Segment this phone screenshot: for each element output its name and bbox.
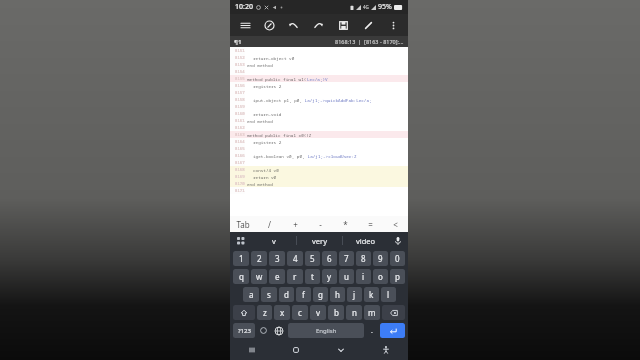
button[interactable]: u xyxy=(339,269,354,284)
button[interactable]: y xyxy=(322,269,337,284)
button[interactable]: x xyxy=(274,305,290,320)
button[interactable]: Edit xyxy=(359,16,377,34)
staticText: 8171 xyxy=(235,188,245,193)
button[interactable]: k xyxy=(364,287,379,302)
staticText: ¶1 xyxy=(234,38,242,46)
staticText: 8163 xyxy=(235,132,245,137)
button[interactable]: Period xyxy=(365,323,379,338)
staticText: 8158 xyxy=(235,97,245,102)
button[interactable]: r xyxy=(287,269,303,284)
button[interactable]: o xyxy=(373,269,388,284)
button[interactable]: - xyxy=(308,216,333,232)
button[interactable]: < xyxy=(383,216,408,232)
staticText: 2 xyxy=(257,253,262,264)
button[interactable]: 4 xyxy=(287,251,303,266)
button[interactable]: Back xyxy=(318,340,363,360)
button[interactable]: Tab xyxy=(230,216,256,232)
staticText: 4 xyxy=(293,253,298,264)
button[interactable]: v xyxy=(252,232,296,249)
button[interactable]: = xyxy=(358,216,383,232)
button[interactable]: d xyxy=(279,287,294,302)
button[interactable]: g xyxy=(313,287,328,302)
button[interactable]: 5 xyxy=(305,251,320,266)
button[interactable]: n xyxy=(346,305,362,320)
button[interactable]: l xyxy=(381,287,396,302)
button[interactable]: 3 xyxy=(269,251,285,266)
button[interactable]: Voice input xyxy=(388,232,408,249)
staticText: Lec/a;)V xyxy=(307,76,328,82)
button[interactable]: / xyxy=(256,216,282,232)
staticText: 6 xyxy=(327,253,332,264)
button[interactable]: Menu xyxy=(236,16,254,34)
button[interactable]: Keyboard options xyxy=(230,232,252,249)
staticText: b xyxy=(334,307,339,318)
button[interactable]: a xyxy=(243,287,259,302)
staticText: z xyxy=(263,307,267,318)
button[interactable]: very xyxy=(297,232,342,249)
staticText: 8164 xyxy=(235,139,245,144)
staticText: 8165 xyxy=(235,146,245,151)
staticText: end method xyxy=(247,118,273,124)
staticText: i xyxy=(362,271,365,282)
staticText: n xyxy=(352,307,357,318)
button[interactable]: + xyxy=(282,216,308,232)
staticText: 8168 xyxy=(235,167,245,172)
button[interactable]: q xyxy=(233,269,249,284)
button[interactable]: Shift xyxy=(233,305,255,320)
button[interactable]: w xyxy=(251,269,267,284)
staticText: 8155 xyxy=(235,76,245,81)
staticText: k xyxy=(369,289,374,300)
button[interactable]: b xyxy=(328,305,344,320)
staticText: f xyxy=(302,289,305,300)
button[interactable]: h xyxy=(330,287,345,302)
button[interactable]: s xyxy=(261,287,277,302)
staticText: d xyxy=(284,289,289,300)
button[interactable]: p xyxy=(390,269,405,284)
staticText: method public final x0()Z xyxy=(247,132,312,138)
button[interactable]: English xyxy=(288,323,364,338)
button[interactable]: 7 xyxy=(339,251,354,266)
button[interactable]: Save xyxy=(334,16,352,34)
staticText: return-void xyxy=(253,111,282,117)
button[interactable]: ?123 xyxy=(233,323,255,338)
staticText: 5 xyxy=(310,253,315,264)
button[interactable]: 8 xyxy=(356,251,371,266)
staticText: 8151 xyxy=(235,48,245,53)
button[interactable]: 1 xyxy=(233,251,249,266)
button[interactable]: Enter xyxy=(380,323,405,338)
staticText: La/j1;->cloudUser:Z xyxy=(305,153,357,159)
button[interactable]: More options xyxy=(384,16,402,34)
staticText: 0 xyxy=(395,253,400,264)
staticText: 8160 xyxy=(235,111,245,116)
button[interactable]: Recents xyxy=(230,340,274,360)
button[interactable]: m xyxy=(364,305,380,320)
button[interactable]: Accessibility xyxy=(363,340,408,360)
button[interactable]: 6 xyxy=(322,251,337,266)
button[interactable]: f xyxy=(296,287,311,302)
button[interactable]: video xyxy=(343,232,388,249)
staticText: method public final w1( xyxy=(247,76,307,82)
staticText: very xyxy=(312,236,327,246)
button[interactable]: e xyxy=(269,269,285,284)
button[interactable]: Change language xyxy=(270,323,287,338)
button[interactable]: Redo xyxy=(309,16,327,34)
button[interactable]: v xyxy=(310,305,326,320)
button[interactable]: i xyxy=(356,269,371,284)
button[interactable]: * xyxy=(333,216,358,232)
button[interactable]: Emoji xyxy=(256,323,270,338)
button[interactable]: z xyxy=(257,305,272,320)
button[interactable]: 9 xyxy=(373,251,388,266)
button[interactable]: c xyxy=(292,305,308,320)
staticText: 10:20 xyxy=(235,2,253,12)
button[interactable]: 0 xyxy=(390,251,405,266)
button[interactable]: Navigate xyxy=(260,16,278,34)
button[interactable]: j xyxy=(347,287,362,302)
button[interactable]: Undo xyxy=(284,16,302,34)
button[interactable]: 2 xyxy=(251,251,267,266)
staticText: 8166 xyxy=(235,153,245,158)
staticText: = xyxy=(368,219,373,230)
button[interactable]: Backspace xyxy=(382,305,405,320)
button[interactable]: t xyxy=(305,269,320,284)
staticText: 8169 xyxy=(235,174,245,179)
button[interactable]: Home xyxy=(274,340,318,360)
